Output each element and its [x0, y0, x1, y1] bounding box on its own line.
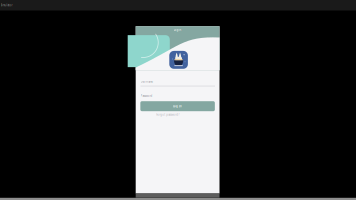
staticText: Simulator: [0, 3, 12, 7]
button[interactable]: Forgot password?: [136, 113, 219, 117]
staticText: Forgot password?: [156, 113, 179, 116]
button[interactable]: Log In: [140, 101, 215, 111]
staticText: Password: [140, 94, 152, 98]
staticText: Username: [140, 80, 153, 83]
staticText: Login: [174, 28, 182, 32]
button[interactable]: Username: [136, 78, 219, 86]
staticText: Log In: [173, 104, 182, 108]
button[interactable]: Password: [136, 92, 219, 100]
